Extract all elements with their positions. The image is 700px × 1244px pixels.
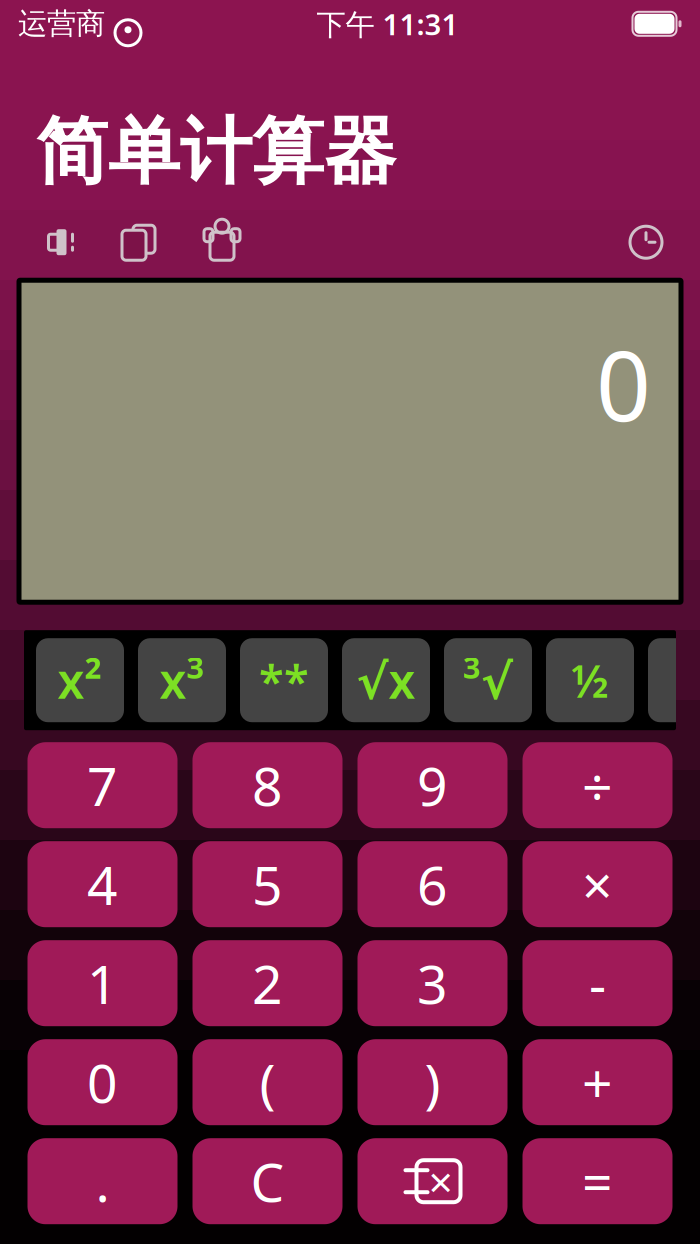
staticText: x² — [57, 648, 102, 712]
staticText: 2 — [252, 948, 283, 1019]
staticText: x³ — [159, 648, 204, 712]
button[interactable]: ** — [240, 638, 328, 722]
staticText: ** — [259, 650, 309, 710]
button[interactable]: × — [357, 1138, 507, 1224]
staticText: 简单计算器 — [36, 108, 396, 196]
button[interactable]: 5 — [192, 841, 342, 927]
button[interactable]: 7 — [27, 742, 177, 828]
button[interactable]: x³ — [138, 638, 226, 722]
button[interactable]: ÷ — [522, 742, 672, 828]
button[interactable]: Theme — [180, 218, 264, 266]
button[interactable]: ³√ — [444, 638, 532, 722]
button[interactable]: 3 — [357, 940, 507, 1026]
button[interactable]: ) — [357, 1039, 507, 1125]
button[interactable]: ( — [192, 1039, 342, 1125]
staticText: - — [589, 948, 606, 1019]
button[interactable]: . — [27, 1138, 177, 1224]
staticText: × — [582, 849, 613, 920]
staticText: ÷ — [582, 750, 613, 821]
button[interactable]: C — [192, 1138, 342, 1224]
button[interactable]: = — [522, 1138, 672, 1224]
staticText: 0 — [87, 1047, 118, 1118]
staticText: 下午 11:31 — [316, 4, 458, 43]
button[interactable]: ½ — [546, 638, 634, 722]
staticText: . — [95, 1146, 109, 1217]
staticText: 4 — [87, 849, 118, 920]
button[interactable]: + — [522, 1039, 672, 1125]
button[interactable]: 8 — [192, 742, 342, 828]
staticText: = — [582, 1146, 613, 1217]
staticText: ½ — [571, 650, 609, 710]
staticText: C — [250, 1146, 284, 1217]
button[interactable]: History — [616, 218, 676, 266]
staticText: 运营商 — [18, 6, 105, 42]
staticText: 5 — [252, 849, 283, 920]
button[interactable]: 2 — [192, 940, 342, 1026]
staticText: 3 — [417, 948, 448, 1019]
staticText: 6 — [417, 849, 448, 920]
button[interactable]: √x — [342, 638, 430, 722]
staticText: 7 — [87, 750, 118, 821]
staticText: + — [582, 1047, 613, 1118]
staticText: √x — [356, 648, 415, 712]
button[interactable]: × — [522, 841, 672, 927]
staticText: 8 — [252, 750, 283, 821]
staticText: ) — [424, 1047, 440, 1118]
button[interactable]: 4 — [27, 841, 177, 927]
staticText: ( — [259, 1047, 275, 1118]
button[interactable]: 1 — [27, 940, 177, 1026]
button[interactable]: - — [522, 940, 672, 1026]
button[interactable]: Sound — [24, 218, 96, 266]
staticText: × — [428, 1153, 452, 1210]
button[interactable]: Copy — [96, 218, 180, 266]
button[interactable]: x² — [36, 638, 124, 722]
staticText: 0 — [596, 320, 651, 448]
button[interactable]: 0 — [27, 1039, 177, 1125]
button[interactable]: 9 — [357, 742, 507, 828]
staticText: ³√ — [463, 648, 513, 712]
button[interactable] — [648, 638, 700, 722]
staticText: 9 — [417, 750, 448, 821]
staticText: 1 — [87, 948, 118, 1019]
button[interactable]: 6 — [357, 841, 507, 927]
